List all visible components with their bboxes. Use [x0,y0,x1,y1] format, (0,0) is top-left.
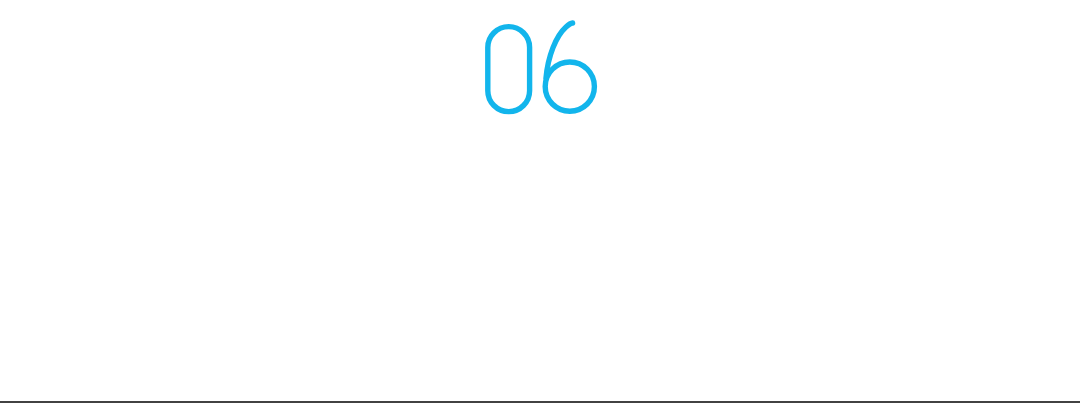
button[interactable]: Number 06 [0,0,1080,408]
